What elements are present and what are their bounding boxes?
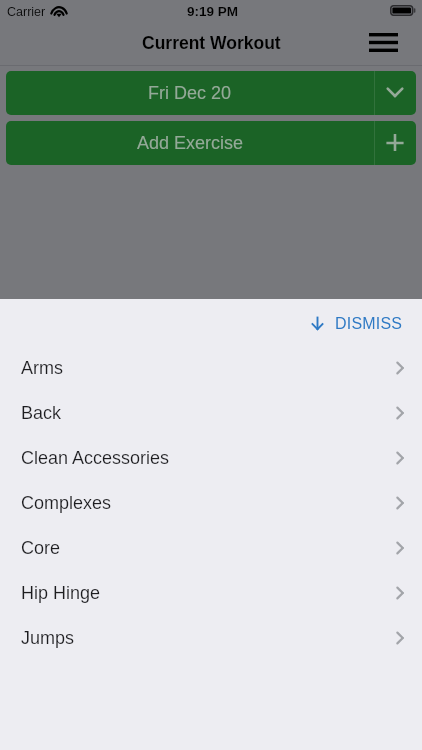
button[interactable]: Hip Hinge xyxy=(0,570,422,615)
staticText: Arms xyxy=(21,358,63,378)
staticText: Core xyxy=(21,538,61,558)
staticText: Back xyxy=(21,403,62,423)
staticText: Jumps xyxy=(21,628,75,648)
staticText: Hip Hinge xyxy=(21,583,101,603)
staticText: Current Workout xyxy=(142,33,281,53)
button[interactable]: DISMISS xyxy=(287,307,422,337)
staticText: 9:19 PM xyxy=(187,4,239,19)
staticText: Add Exercise xyxy=(137,133,244,153)
button[interactable]: Arms xyxy=(0,345,422,390)
staticText: DISMISS xyxy=(335,315,403,333)
button[interactable]: Complexes xyxy=(0,480,422,525)
staticText: Carrier xyxy=(7,5,46,19)
button[interactable]: Core xyxy=(0,525,422,570)
staticText: Fri Dec 20 xyxy=(148,83,232,103)
staticText: Clean Accessories xyxy=(21,448,170,468)
button[interactable]: Add Exercise xyxy=(6,121,416,165)
button[interactable]: Fri Dec 20 xyxy=(6,71,416,115)
staticText: Complexes xyxy=(21,493,112,513)
button[interactable]: Jumps xyxy=(0,615,422,660)
button[interactable]: Menu xyxy=(363,27,403,57)
button[interactable]: Back xyxy=(0,390,422,435)
button[interactable]: Clean Accessories xyxy=(0,435,422,480)
